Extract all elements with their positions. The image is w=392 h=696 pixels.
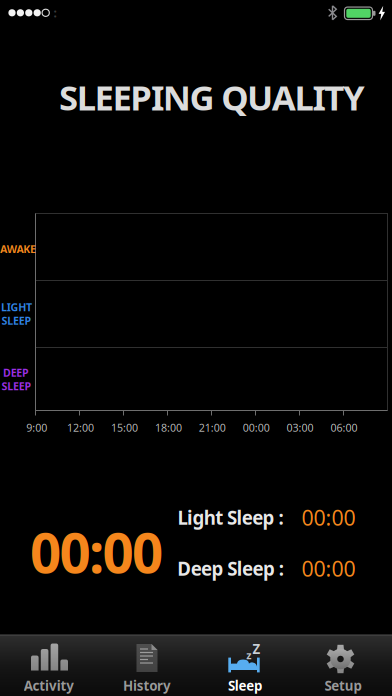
staticText: 00:00 — [301, 554, 355, 583]
staticText: 00:00 — [243, 420, 270, 435]
button[interactable]: History — [98, 635, 196, 696]
staticText: Activity — [24, 677, 74, 694]
staticText: z — [246, 648, 251, 662]
staticText: 06:00 — [330, 420, 357, 435]
staticText: AWAKE — [0, 242, 36, 256]
staticText: 18:00 — [155, 420, 182, 435]
staticText: Setup — [324, 677, 362, 694]
staticText: 00:00 — [30, 516, 163, 588]
button[interactable]: Setup — [294, 635, 392, 696]
staticText: DEEP — [3, 365, 29, 380]
staticText: 15:00 — [111, 420, 138, 435]
staticText: Sleep — [228, 677, 262, 694]
staticText: History — [123, 677, 171, 694]
staticText: SLEEPING QUALITY — [59, 74, 365, 120]
staticText: Deep Sleep : — [177, 556, 284, 581]
staticText: SLEEP — [2, 313, 31, 328]
staticText: : — [53, 5, 56, 21]
button[interactable]: Activity — [0, 635, 98, 696]
button[interactable]: Sleep — [196, 635, 294, 696]
staticText: 00:00 — [301, 503, 355, 532]
staticText: 12:00 — [67, 420, 94, 435]
staticText: 03:00 — [287, 420, 314, 435]
staticText: 9:00 — [26, 420, 47, 435]
staticText: Z — [253, 640, 261, 658]
staticText: SLEEP — [2, 379, 31, 393]
staticText: 21:00 — [199, 420, 226, 435]
staticText: LIGHT — [1, 300, 32, 314]
staticText: Light Sleep : — [178, 505, 283, 530]
